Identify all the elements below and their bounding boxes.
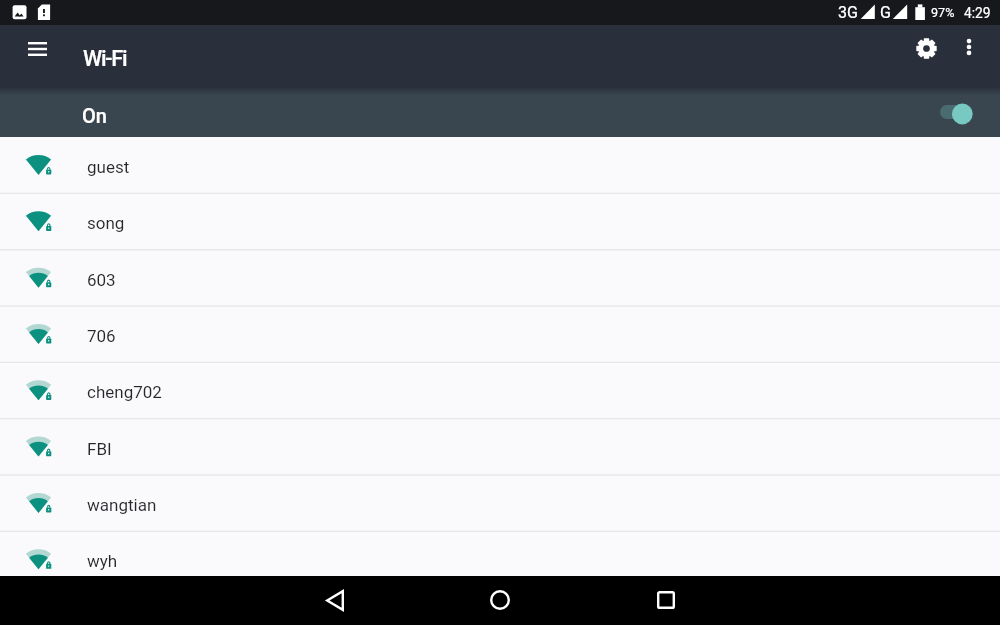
button[interactable]: Back xyxy=(311,576,359,624)
button[interactable]: song xyxy=(0,193,1000,249)
staticText: 97% xyxy=(931,5,955,20)
button[interactable]: guest xyxy=(0,137,1000,193)
button[interactable]: Navigation drawer xyxy=(13,25,61,73)
staticText: cheng702 xyxy=(87,382,162,402)
button[interactable]: Home xyxy=(476,576,524,624)
staticText: 603 xyxy=(87,270,116,290)
staticText: FBI xyxy=(87,439,112,459)
button[interactable]: 603 xyxy=(0,250,1000,306)
staticText: song xyxy=(87,213,125,233)
staticText: wyh xyxy=(87,551,118,571)
button[interactable]: FBI xyxy=(0,419,1000,475)
button[interactable]: cheng702 xyxy=(0,362,1000,418)
button[interactable]: 706 xyxy=(0,306,1000,362)
button[interactable]: On xyxy=(0,87,1000,137)
staticText: 4:29 xyxy=(964,5,991,21)
staticText: guest xyxy=(87,157,130,177)
staticText: G xyxy=(880,3,891,22)
staticText: 706 xyxy=(87,326,116,346)
staticText: 3G xyxy=(838,3,858,22)
button[interactable]: More options xyxy=(947,25,991,69)
button[interactable]: wyh xyxy=(0,531,1000,576)
button[interactable]: Advanced Wi-Fi settings xyxy=(902,24,950,72)
staticText: Wi-Fi xyxy=(83,46,127,72)
button[interactable]: Recent apps xyxy=(642,576,690,624)
button[interactable]: wangtian xyxy=(0,475,1000,531)
staticText: On xyxy=(82,104,107,127)
staticText: wangtian xyxy=(87,495,157,515)
